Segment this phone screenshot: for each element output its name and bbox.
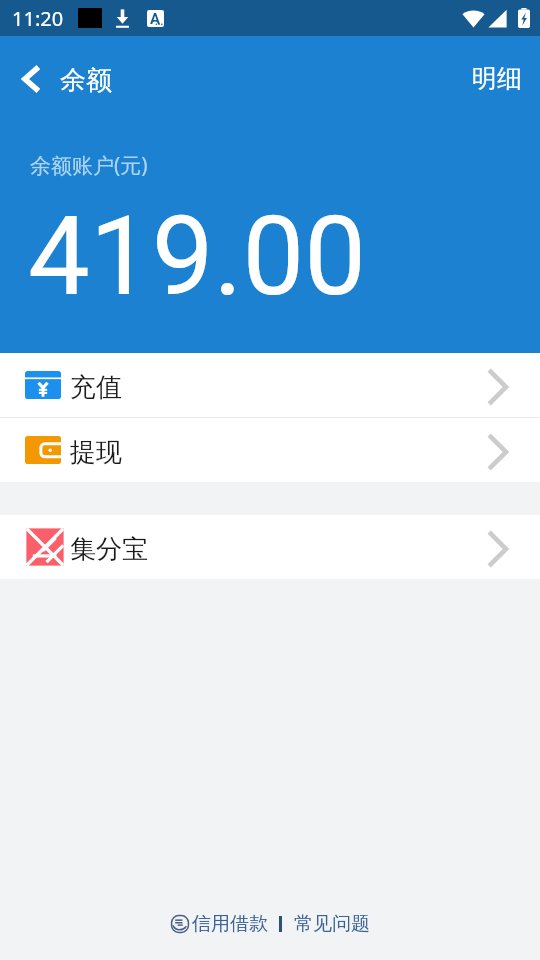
staticText: 余额 [60, 64, 112, 97]
button[interactable]: 信用借款 [168, 906, 270, 942]
staticText: 常见问题 [294, 912, 370, 936]
staticText: 余额账户(元) [30, 151, 148, 180]
staticText: A [150, 10, 161, 27]
button[interactable]: 集分宝 [0, 515, 540, 579]
staticText: 充值 [70, 371, 122, 404]
button[interactable]: 常见问题 [292, 906, 372, 942]
button[interactable]: 充值 [0, 353, 540, 417]
staticText: 信用借款 [192, 912, 268, 936]
staticText: 集分宝 [70, 533, 148, 566]
button[interactable]: 提现 [0, 418, 540, 482]
staticText: 明细 [472, 63, 522, 94]
staticText: 11:20 [12, 5, 64, 32]
staticText: 419.00 [28, 192, 367, 321]
staticText: 提现 [70, 436, 122, 469]
button[interactable]: 明细 [454, 47, 540, 110]
button[interactable]: Back [3, 48, 59, 110]
